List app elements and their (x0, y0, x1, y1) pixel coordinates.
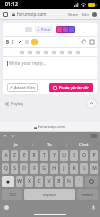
staticText: R (32, 152, 36, 159)
button[interactable]: C (35, 176, 43, 187)
staticText: Share (68, 12, 79, 17)
staticText: D (22, 165, 26, 172)
button[interactable]: J (60, 163, 68, 174)
button[interactable]: B (55, 176, 63, 187)
button[interactable]: Je (0, 140, 32, 149)
staticText: Write your reply... (9, 60, 47, 66)
button[interactable]: E (20, 150, 28, 161)
staticText: C'est (79, 142, 89, 148)
button[interactable]: L (80, 163, 88, 174)
staticText: T (43, 152, 46, 159)
staticText: L (83, 165, 86, 172)
button[interactable]: + (37, 27, 51, 32)
button[interactable]: F (30, 163, 38, 174)
staticText: 01:12 (5, 1, 18, 8)
staticText: G (42, 165, 46, 172)
button[interactable]: Paylaş (5, 101, 23, 106)
button[interactable]: Voice input (91, 205, 96, 210)
button[interactable]: G (40, 163, 48, 174)
staticText: X (28, 178, 31, 185)
button[interactable]: Emoji (4, 205, 9, 210)
button[interactable]: Tabs (3, 12, 8, 17)
staticText: forumsip.com (17, 11, 47, 17)
button[interactable]: 123 (2, 189, 22, 200)
button[interactable]: C'est (67, 140, 100, 149)
staticText: + (37, 27, 40, 32)
button[interactable]: Previous field (3, 134, 7, 138)
button[interactable]: Y (50, 150, 58, 161)
button[interactable]: D (20, 163, 28, 174)
staticText: C (37, 178, 41, 185)
button[interactable]: Menu (92, 12, 97, 17)
button[interactable]: Colour options (57, 27, 74, 32)
button[interactable]: O (80, 150, 88, 161)
button[interactable]: ' (75, 176, 83, 187)
button[interactable]: Backspace (85, 176, 98, 187)
button[interactable]: M (90, 163, 98, 174)
button[interactable]: Undo (82, 40, 86, 44)
button[interactable]: B (6, 39, 9, 45)
button[interactable]: Scroll to top (86, 98, 97, 109)
staticText: Attach files (14, 85, 35, 90)
staticText: Price (41, 27, 51, 32)
button[interactable]: V (45, 176, 53, 187)
staticText: M (92, 165, 97, 172)
button[interactable]: T (40, 150, 48, 161)
button[interactable]: Z (11, 150, 18, 161)
staticText: forumsip.com (38, 124, 66, 130)
button[interactable]: H (50, 163, 58, 174)
button[interactable]: W (16, 176, 23, 187)
staticText: W (17, 178, 22, 185)
staticText: J (63, 165, 65, 172)
staticText: F (33, 165, 36, 172)
button[interactable]: retour (77, 189, 98, 200)
staticText: K (72, 165, 76, 172)
staticText: S (13, 165, 16, 172)
button[interactable]: S (11, 163, 18, 174)
button[interactable]: P (90, 150, 98, 161)
button[interactable]: Next field (11, 134, 15, 138)
button[interactable]: Highlight (31, 39, 38, 45)
staticText: U (62, 152, 66, 159)
button[interactable]: K (70, 163, 78, 174)
button[interactable]: I (12, 39, 14, 45)
button[interactable]: Shift (2, 176, 14, 187)
button[interactable]: Attach files (10, 85, 35, 90)
staticText: H (52, 165, 56, 172)
button[interactable]: espace (24, 189, 75, 200)
button[interactable]: Posta yönlendir (53, 85, 89, 90)
button[interactable]: Tu (33, 140, 66, 149)
staticText: A (4, 152, 8, 159)
staticText: Je (14, 142, 18, 148)
staticText: Y (53, 152, 56, 159)
staticText: Z (13, 152, 16, 159)
button[interactable]: R (30, 150, 38, 161)
staticText: retour (82, 192, 94, 197)
staticText: 123 (9, 192, 16, 197)
staticText: espace (43, 192, 57, 197)
button[interactable]: Fullscreen (90, 40, 94, 44)
button[interactable]: Link (18, 40, 22, 44)
button[interactable]: X (25, 176, 33, 187)
staticText: Edit (82, 12, 89, 17)
staticText: ' (78, 178, 80, 185)
button[interactable]: U (60, 150, 68, 161)
button[interactable]: Q (2, 163, 9, 174)
staticText: E (23, 152, 26, 159)
button[interactable] (12, 13, 15, 16)
button[interactable]: I (70, 150, 78, 161)
button[interactable]: N (65, 176, 73, 187)
button[interactable]: A (2, 150, 9, 161)
staticText: N (67, 178, 71, 185)
